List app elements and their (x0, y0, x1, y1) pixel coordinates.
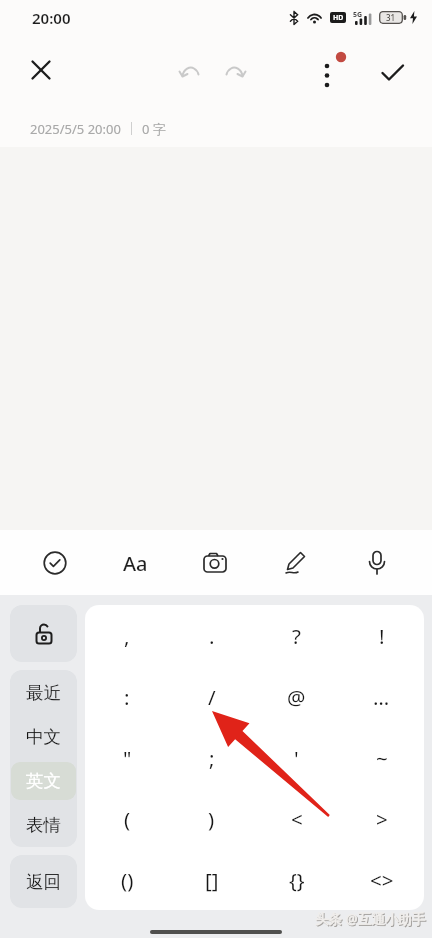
staticText: 最近 (26, 682, 61, 704)
staticText: 5G (353, 10, 363, 20)
button[interactable] (354, 540, 400, 586)
button[interactable]: Aa (112, 540, 158, 586)
staticText: 返回 (26, 871, 61, 893)
staticText: . (209, 622, 215, 650)
button[interactable]: 最近 (10, 670, 77, 715)
staticText: Aa (123, 550, 148, 577)
staticText: … (373, 683, 390, 711)
button[interactable] (192, 540, 238, 586)
button[interactable]: 表情 (10, 803, 77, 847)
staticText: ! (379, 622, 385, 650)
button[interactable]: ? (254, 605, 339, 666)
button[interactable] (222, 62, 246, 86)
button[interactable]: , (85, 605, 169, 666)
staticText: @ (287, 683, 306, 711)
button[interactable]: . (169, 605, 254, 666)
staticText: () (121, 866, 134, 894)
staticText: <> (370, 866, 394, 894)
staticText: / (208, 683, 216, 711)
button[interactable]: / (169, 666, 254, 727)
button[interactable]: ( (85, 788, 169, 849)
staticText: 0 字 (142, 120, 166, 138)
button[interactable]: 返回 (10, 855, 77, 908)
button[interactable]: () (85, 849, 169, 910)
staticText: 2025/5/5 20:00 (30, 120, 121, 138)
button[interactable] (380, 61, 406, 87)
button[interactable]: 中文 (10, 715, 77, 759)
staticText: {} (289, 866, 305, 894)
staticText: ( (124, 805, 131, 833)
button[interactable]: ~ (339, 727, 424, 788)
staticText: 中文 (26, 726, 61, 748)
staticText: 头条 @互通小助手 (316, 911, 427, 929)
button[interactable]: " (85, 727, 169, 788)
button[interactable] (179, 62, 203, 86)
staticText: ) (208, 805, 215, 833)
staticText: ' (294, 744, 299, 772)
button[interactable] (315, 50, 349, 90)
staticText: [] (205, 866, 219, 894)
button[interactable] (273, 540, 319, 586)
button[interactable] (28, 57, 54, 83)
staticText: HD (333, 13, 344, 23)
staticText: ? (292, 622, 301, 650)
button[interactable] (10, 605, 77, 662)
staticText: 表情 (26, 814, 61, 836)
staticText: 31 (386, 12, 396, 23)
staticText: 20:00 (32, 8, 71, 28)
staticText: 头条 @互通小助手 (315, 910, 426, 928)
staticText: 英文 (26, 770, 61, 792)
staticText: : (124, 683, 130, 711)
button[interactable]: {} (254, 849, 339, 910)
button[interactable]: ; (169, 727, 254, 788)
button[interactable]: ) (169, 788, 254, 849)
button[interactable]: <> (339, 849, 424, 910)
staticText: " (123, 744, 132, 772)
staticText: < (291, 805, 303, 833)
button[interactable]: ' (254, 727, 339, 788)
button[interactable] (32, 540, 78, 586)
button[interactable]: < (254, 788, 339, 849)
button[interactable]: [] (169, 849, 254, 910)
staticText: ; (209, 744, 215, 772)
button[interactable]: ! (339, 605, 424, 666)
button[interactable]: > (339, 788, 424, 849)
button[interactable]: 英文 (11, 762, 76, 800)
staticText: ~ (376, 744, 388, 772)
staticText: > (376, 805, 388, 833)
button[interactable]: : (85, 666, 169, 727)
staticText: , (124, 622, 130, 650)
button[interactable]: … (339, 666, 424, 727)
button[interactable]: @ (254, 666, 339, 727)
